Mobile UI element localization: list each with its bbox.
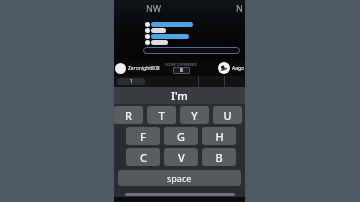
staticText: SCORE DIFFERENCE [165, 62, 198, 67]
staticText: Y [191, 108, 198, 123]
button[interactable]: U [213, 106, 242, 124]
button[interactable]: Zeronight808 [115, 63, 160, 74]
button[interactable]: B [202, 148, 236, 166]
button[interactable]: T [147, 106, 176, 124]
button[interactable]: space [118, 170, 241, 186]
button[interactable]: Aago [218, 62, 245, 74]
button[interactable]: H [202, 127, 236, 145]
button[interactable]: F [126, 127, 160, 145]
staticText: H [215, 129, 224, 144]
button[interactable]: I'm [114, 87, 245, 104]
staticText: B [215, 150, 223, 165]
staticText: 8 [180, 67, 183, 74]
staticText: N [236, 2, 243, 14]
staticText: V [178, 150, 185, 165]
staticText: F [140, 129, 146, 144]
staticText: U [223, 108, 232, 123]
staticText: I'm [171, 88, 188, 103]
staticText: Zeronight808 [128, 65, 160, 72]
button[interactable]: V [164, 148, 198, 166]
button[interactable]: Y [180, 106, 209, 124]
staticText: R [125, 108, 132, 123]
staticText: space [167, 172, 192, 184]
button[interactable]: C [126, 148, 160, 166]
button[interactable]: R [114, 106, 143, 124]
staticText: C [140, 150, 147, 165]
button[interactable]: G [164, 127, 198, 145]
staticText: G [177, 129, 185, 144]
staticText: NW [146, 2, 162, 14]
staticText: 1 [130, 78, 133, 85]
button[interactable] [143, 47, 240, 54]
staticText: Aago [232, 65, 245, 72]
staticText: T [158, 108, 165, 123]
